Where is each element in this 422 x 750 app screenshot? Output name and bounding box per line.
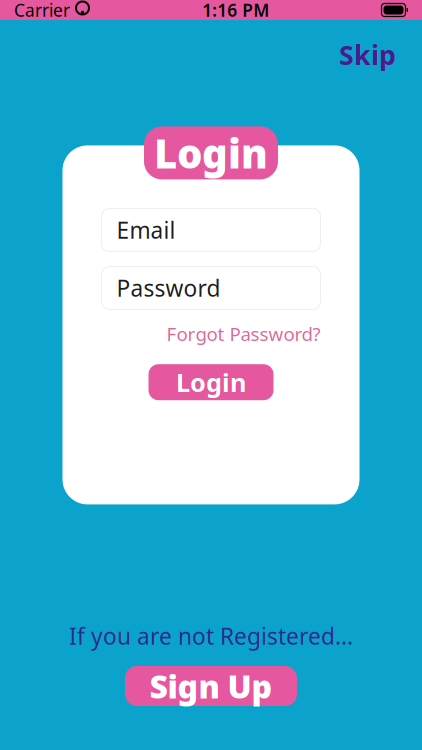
staticText: Carrier: [14, 0, 70, 21]
button[interactable]: Login: [148, 364, 273, 400]
button[interactable]: Sign Up: [125, 666, 297, 706]
staticText: Skip: [339, 37, 396, 72]
staticText: If you are not Registered...: [69, 621, 353, 651]
button[interactable]: Forgot Password?: [166, 321, 320, 346]
staticText: Login: [154, 126, 268, 179]
button[interactable]: Skip: [325, 31, 410, 78]
staticText: Email: [116, 215, 175, 245]
staticText: Login: [176, 365, 246, 399]
staticText: Password: [116, 273, 220, 303]
staticText: Sign Up: [149, 665, 272, 707]
staticText: Forgot Password?: [166, 321, 320, 346]
staticText: 1:16 PM: [202, 0, 269, 21]
